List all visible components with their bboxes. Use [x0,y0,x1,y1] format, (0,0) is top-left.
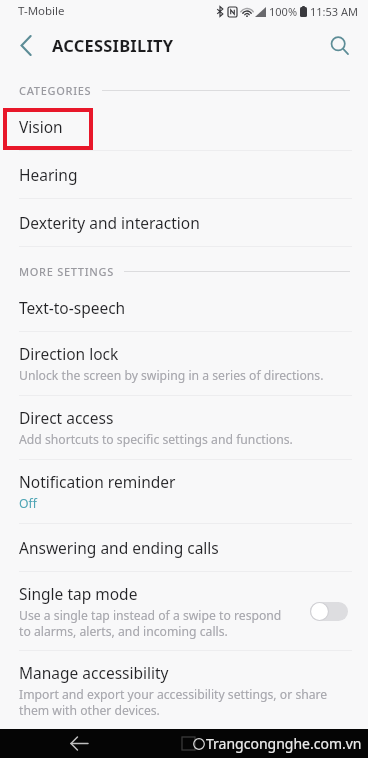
button[interactable]: Notification reminder [0,460,368,524]
button[interactable]: Direct access [0,396,368,460]
staticText: MORE SETTINGS [19,264,114,279]
staticText: 11:53 AM [310,4,358,19]
staticText: Notification reminder [19,471,176,492]
staticText: Hearing [19,164,78,185]
button[interactable]: Back [8,27,44,63]
button[interactable]: Text-to-speech [0,284,368,332]
staticText: Manage accessibility [19,662,169,683]
button[interactable]: Answering and ending calls [0,524,368,572]
button[interactable]: Manage accessibility [0,651,368,729]
staticText: 100% [269,4,298,19]
staticText: Direct access [19,407,114,428]
staticText: ACCESSIBILITY [52,34,174,56]
staticText: Vision [19,116,63,137]
staticText: Single tap mode [19,583,138,604]
button[interactable]: Hearing [0,151,368,199]
staticText: Text-to-speech [19,297,126,318]
staticText: Trangcongnghe.com.vn [206,734,362,753]
button[interactable]: Vision [0,103,368,151]
staticText: Off [19,495,37,512]
button[interactable]: Back [62,729,96,758]
staticText: Use a single tap instead of a swipe to r… [19,607,282,639]
staticText: CATEGORIES [19,83,92,98]
button[interactable]: Search [320,26,358,64]
staticText: Unlock the screen by swiping in a series… [19,367,324,384]
button[interactable]: Single tap mode [0,572,368,651]
staticText: T-Mobile [18,3,65,19]
button[interactable]: Single tap mode toggle [310,596,354,626]
staticText: Import and export your accessibility set… [19,686,328,718]
staticText: Direction lock [19,343,119,364]
button[interactable]: Dexterity and interaction [0,199,368,247]
button[interactable]: Direction lock [0,332,368,396]
staticText: Answering and ending calls [19,537,219,558]
staticText: Dexterity and interaction [19,212,200,233]
staticText: Add shortcuts to specific settings and f… [19,431,293,448]
